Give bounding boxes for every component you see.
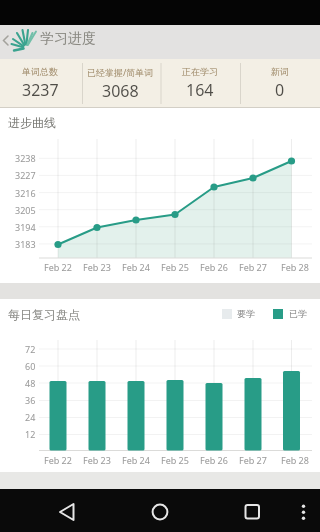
- staticText: Feb 23: [83, 454, 111, 466]
- staticText: 164: [186, 79, 214, 101]
- staticText: Feb 22: [44, 454, 72, 466]
- staticText: 0: [275, 79, 285, 101]
- staticText: 3194: [15, 221, 36, 233]
- staticText: 每日复习盘点: [8, 307, 80, 322]
- staticText: 12: [25, 428, 36, 440]
- staticText: 3205: [15, 204, 36, 216]
- staticText: Feb 26: [200, 454, 228, 466]
- staticText: 进步曲线: [8, 115, 56, 130]
- staticText: Feb 24: [122, 454, 150, 466]
- staticText: 3183: [15, 238, 36, 250]
- staticText: 要学: [237, 308, 255, 319]
- button[interactable]: [94, 489, 189, 532]
- staticText: Feb 22: [44, 261, 72, 273]
- button[interactable]: [0, 489, 94, 532]
- staticText: 3068: [102, 80, 139, 102]
- staticText: 单词总数: [22, 66, 58, 77]
- button[interactable]: [189, 489, 284, 532]
- staticText: Feb 27: [239, 454, 267, 466]
- staticText: 3237: [22, 79, 59, 101]
- staticText: 3238: [15, 152, 36, 164]
- staticText: 72: [25, 343, 36, 355]
- button[interactable]: 学习进度: [0, 25, 110, 59]
- staticText: 48: [25, 377, 36, 389]
- staticText: 已学: [289, 308, 307, 319]
- button[interactable]: [284, 489, 320, 532]
- staticText: Feb 25: [161, 261, 189, 273]
- staticText: 3227: [15, 169, 36, 181]
- staticText: Feb 24: [122, 261, 150, 273]
- staticText: 36: [25, 394, 36, 406]
- staticText: 60: [25, 360, 36, 372]
- staticText: 24: [25, 411, 36, 423]
- staticText: 正在学习: [182, 66, 218, 77]
- staticText: 学习进度: [40, 30, 96, 48]
- staticText: 已经掌握/简单词: [87, 66, 154, 78]
- staticText: 新词: [271, 66, 289, 77]
- staticText: 3216: [15, 187, 36, 199]
- staticText: Feb 28: [281, 261, 309, 273]
- staticText: Feb 25: [161, 454, 189, 466]
- staticText: Feb 27: [239, 261, 267, 273]
- staticText: Feb 23: [83, 261, 111, 273]
- staticText: Feb 26: [200, 261, 228, 273]
- button[interactable]: 要学: [222, 308, 307, 319]
- staticText: Feb 28: [281, 454, 309, 466]
